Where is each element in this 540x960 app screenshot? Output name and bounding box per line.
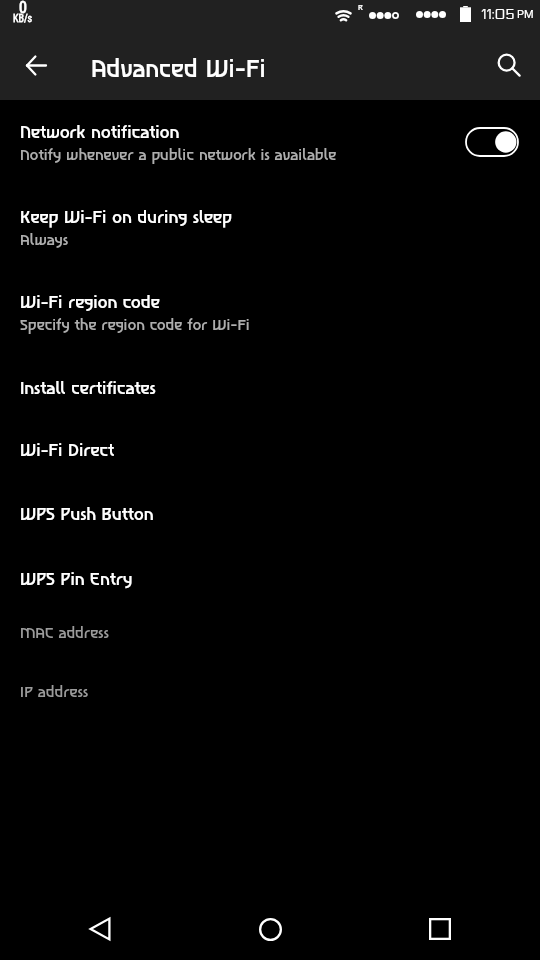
button[interactable]: Network notification, on [465, 127, 519, 157]
staticText: 11:05 [481, 6, 515, 23]
staticText: Network notification [20, 121, 180, 143]
staticText: Notify whenever a public network is avai… [20, 145, 337, 165]
staticText: Advanced Wi-Fi [91, 53, 266, 84]
button[interactable]: Back [70, 899, 130, 959]
staticText: Wi-Fi region code [20, 291, 160, 313]
staticText: Install certificates [20, 377, 156, 399]
staticText: PM [517, 8, 534, 21]
staticText: Keep Wi-Fi on during sleep [20, 206, 232, 228]
button[interactable]: Keep Wi-Fi on during sleep [0, 187, 540, 272]
button[interactable]: Home [240, 899, 300, 959]
staticText: WPS Pin Entry [20, 568, 133, 590]
staticText: R [358, 2, 363, 12]
staticText: KB/s [13, 13, 33, 25]
staticText: Wi-Fi Direct [20, 439, 115, 461]
button[interactable]: Network notification [0, 102, 540, 187]
staticText: Always [20, 230, 68, 250]
staticText: WPS Push Button [20, 503, 154, 525]
staticText: IP address [20, 682, 89, 702]
button[interactable]: WPS Pin Entry [0, 549, 540, 613]
staticText: MAC address [20, 623, 109, 643]
button[interactable]: Install certificates [0, 358, 540, 421]
button[interactable]: Search [489, 45, 530, 86]
button[interactable]: Recent apps [410, 899, 470, 959]
button[interactable]: WPS Push Button [0, 484, 540, 549]
button[interactable]: IP address [0, 672, 540, 732]
staticText: Specify the region code for Wi-Fi [20, 315, 250, 335]
button[interactable]: Wi-Fi Direct [0, 420, 540, 484]
button[interactable]: Navigate up [15, 45, 56, 86]
button[interactable]: Wi-Fi region code [0, 272, 540, 357]
button[interactable]: MAC address [0, 613, 540, 672]
staticText: 0 [19, 0, 27, 17]
